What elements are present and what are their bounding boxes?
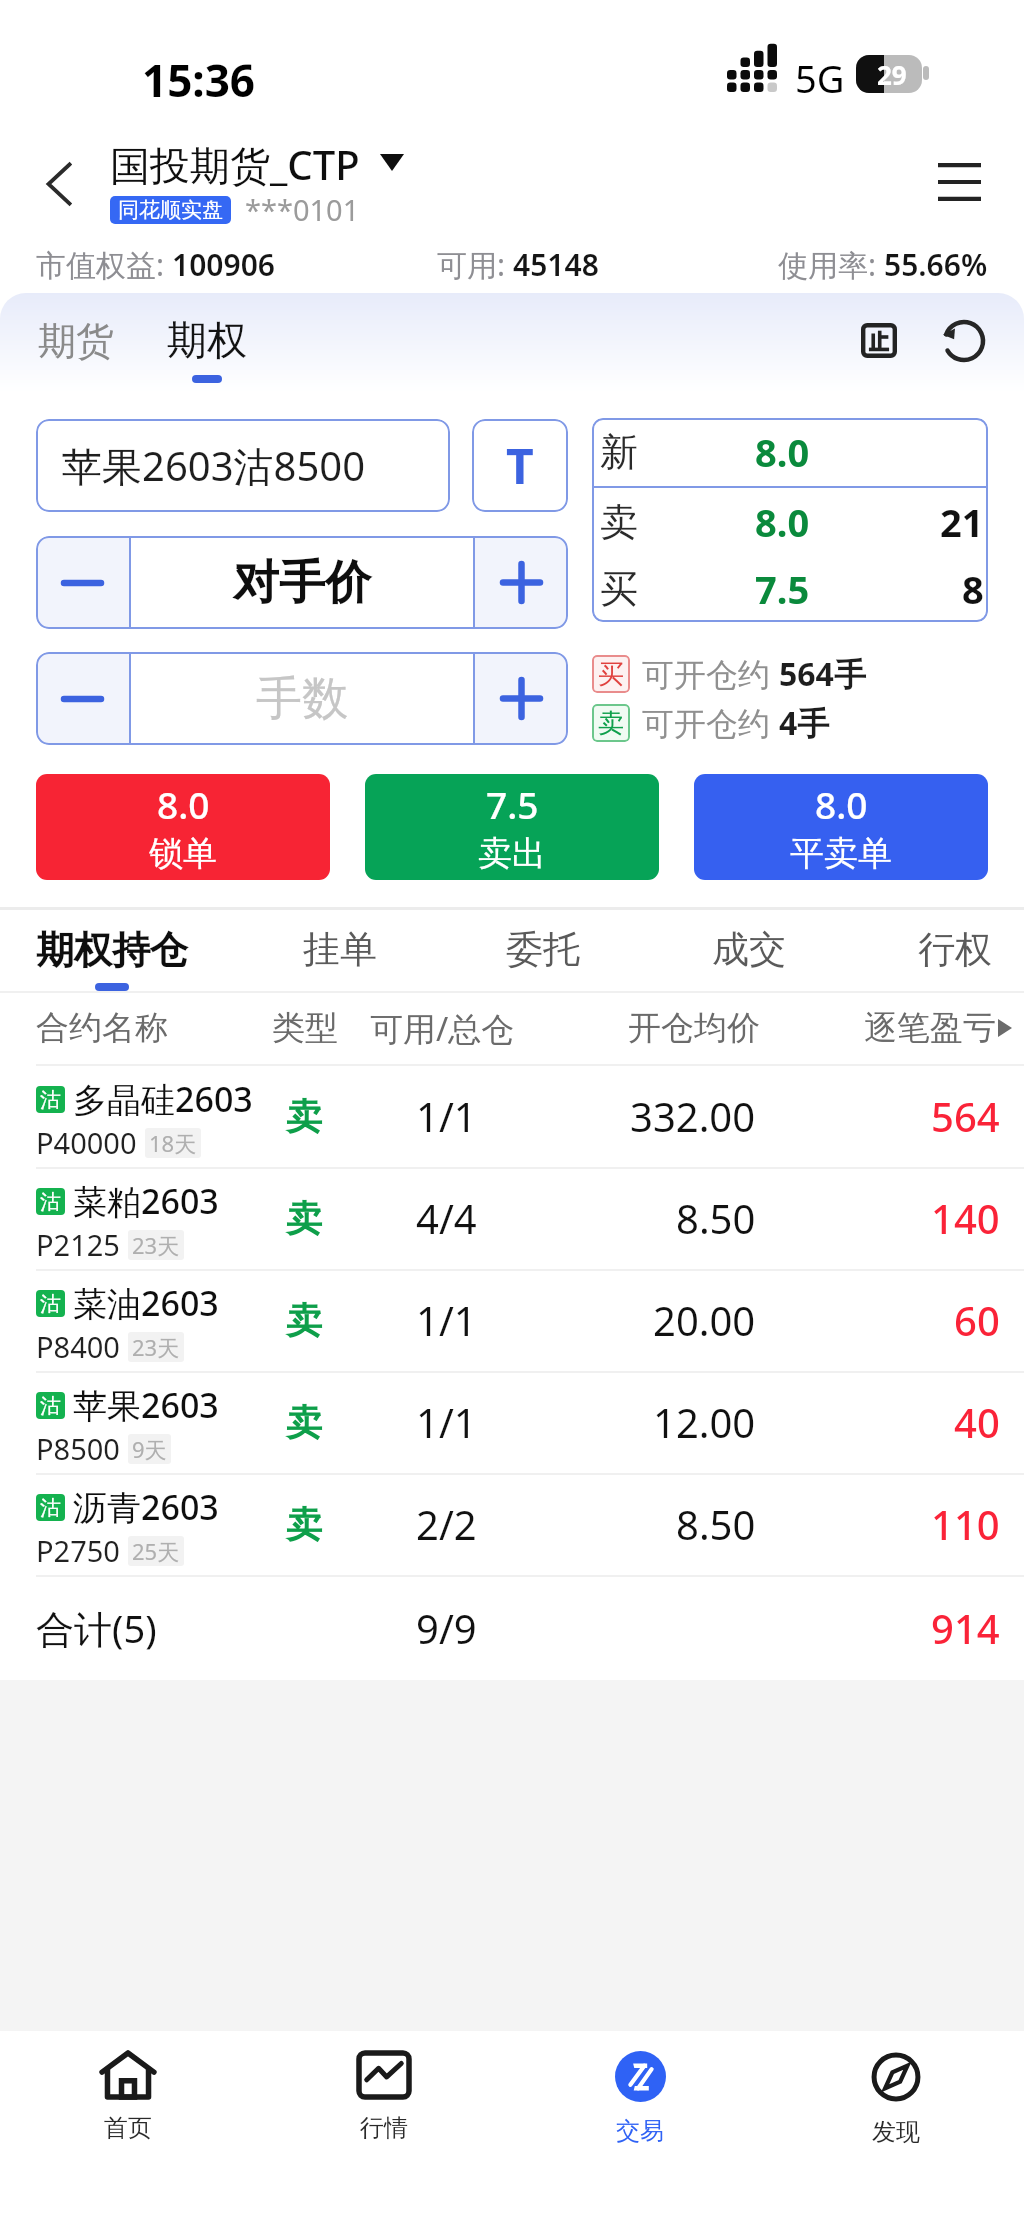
staticText: 合计(5): [36, 1602, 157, 1654]
button[interactable]: 成交: [704, 920, 794, 979]
staticText: 行权: [918, 926, 992, 973]
staticText: 8.0: [755, 426, 810, 478]
staticText: 23天: [132, 1332, 180, 1362]
staticText: 1/1: [416, 1395, 477, 1449]
staticText: 首页: [104, 2113, 152, 2143]
staticText: 可开仓约: [642, 701, 779, 745]
button[interactable]: 逐笔盈亏: [858, 1001, 1018, 1055]
button[interactable]: 期货: [24, 311, 128, 371]
staticText: 8.0: [157, 779, 210, 829]
button[interactable]: 同花顺实盘: [102, 184, 368, 235]
button[interactable]: 发现: [816, 2039, 976, 2179]
button[interactable]: 行权: [910, 920, 1000, 979]
staticText: 开仓均价: [628, 1007, 760, 1049]
staticText: 卖: [286, 1298, 322, 1343]
staticText: 21: [940, 496, 984, 548]
staticText: 平卖单: [790, 832, 892, 875]
staticText: 卖: [286, 1400, 322, 1445]
button[interactable]: 沽: [0, 1167, 1024, 1269]
staticText: P2125: [36, 1225, 120, 1264]
staticText: 1/1: [416, 1293, 477, 1347]
staticText: 类型: [272, 1007, 338, 1049]
staticText: 沽: [40, 1189, 61, 1215]
staticText: 可用/总仓: [370, 1006, 515, 1051]
staticText: 9天: [132, 1434, 167, 1464]
button[interactable]: Refresh: [926, 303, 1002, 379]
staticText: 菜油2603: [73, 1280, 219, 1326]
staticText: 新: [600, 428, 638, 476]
staticText: 332.00: [630, 1089, 756, 1143]
button[interactable]: 沽: [0, 1371, 1024, 1473]
staticText: 15:36: [142, 50, 256, 110]
staticText: 卖: [286, 1502, 322, 1547]
button[interactable]: 期权持仓: [28, 920, 196, 997]
button[interactable]: 沽: [0, 1065, 1024, 1167]
staticText: 4/4: [416, 1191, 477, 1245]
staticText: 沽: [40, 1393, 61, 1419]
staticText: 7.5: [486, 779, 539, 829]
staticText: 沽: [40, 1087, 61, 1113]
button[interactable]: 止损单: [841, 302, 917, 378]
button[interactable]: Menu: [917, 140, 1001, 224]
staticText: 25天: [132, 1536, 180, 1566]
staticText: 20.00: [653, 1293, 756, 1347]
button[interactable]: 委托: [498, 920, 588, 979]
staticText: 140: [931, 1191, 1000, 1245]
staticText: 同花顺实盘: [118, 197, 223, 223]
staticText: 卖: [286, 1196, 322, 1241]
staticText: P2750: [36, 1531, 120, 1570]
staticText: 买: [600, 565, 638, 613]
staticText: 苹果2603沽8500: [62, 438, 366, 493]
button[interactable]: 行情: [304, 2039, 464, 2179]
staticText: ***0101: [245, 190, 360, 229]
staticText: 交易: [616, 2116, 664, 2146]
button[interactable]: 首页: [48, 2039, 208, 2179]
button[interactable]: 交易: [560, 2039, 720, 2179]
staticText: 多晶硅2603: [73, 1076, 253, 1122]
staticText: 60: [954, 1293, 1000, 1347]
button[interactable]: Decrease: [36, 536, 129, 629]
button[interactable]: 挂单: [295, 920, 385, 979]
staticText: 期货: [38, 317, 114, 365]
staticText: 1/1: [416, 1089, 477, 1143]
staticText: 卖: [598, 707, 624, 740]
staticText: 8.0: [815, 779, 868, 829]
staticText: 18天: [149, 1128, 197, 1158]
staticText: 挂单: [303, 926, 377, 973]
button[interactable]: 沽: [0, 1473, 1024, 1575]
button[interactable]: 8.0: [36, 774, 330, 880]
staticText: 手数: [256, 670, 348, 728]
button[interactable]: 8.0: [694, 774, 988, 880]
staticText: 合约名称: [36, 1007, 168, 1049]
staticText: P40000: [36, 1123, 137, 1162]
staticText: 8: [962, 563, 984, 615]
staticText: 使用率:: [778, 244, 884, 285]
staticText: 可用:: [437, 244, 513, 285]
staticText: 期权持仓: [36, 926, 188, 974]
button[interactable]: Back: [17, 142, 101, 226]
staticText: 沽: [40, 1495, 61, 1521]
staticText: 沥青2603: [73, 1484, 219, 1530]
staticText: 可开仓约: [642, 652, 779, 696]
staticText: 23天: [132, 1230, 180, 1260]
staticText: 4手: [779, 701, 830, 745]
button[interactable]: T: [472, 419, 568, 512]
staticText: 锁单: [149, 832, 217, 875]
button[interactable]: 7.5: [365, 774, 659, 880]
staticText: 5G: [795, 52, 845, 104]
staticText: 564: [931, 1089, 1000, 1143]
staticText: 2/2: [416, 1497, 477, 1551]
staticText: 对手价: [233, 554, 371, 612]
button[interactable]: 期权: [153, 309, 261, 389]
button[interactable]: Increase: [475, 652, 568, 745]
staticText: 委托: [506, 926, 580, 973]
button[interactable]: 国投期货_CTP: [102, 129, 412, 200]
staticText: 逐笔盈亏: [864, 1007, 996, 1049]
button[interactable]: Decrease: [36, 652, 129, 745]
staticText: 发现: [872, 2117, 920, 2147]
button[interactable]: Increase: [475, 536, 568, 629]
button[interactable]: 苹果2603沽8500: [36, 419, 450, 512]
staticText: 55.66%: [884, 244, 988, 285]
staticText: 914: [931, 1601, 1000, 1655]
button[interactable]: 沽: [0, 1269, 1024, 1371]
